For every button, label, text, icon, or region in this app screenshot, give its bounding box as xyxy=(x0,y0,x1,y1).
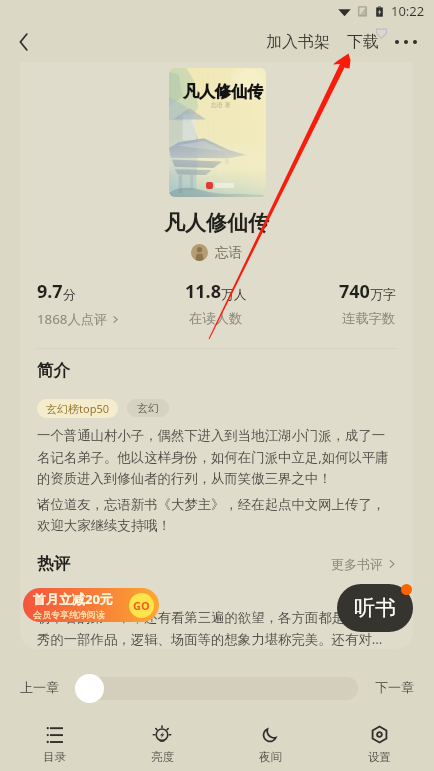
staticText: 凡人修仙传 xyxy=(20,210,413,236)
staticText: 11.8 xyxy=(185,279,221,304)
staticText: 忘语 著 xyxy=(211,101,231,109)
button[interactable]: 设置 xyxy=(325,711,434,771)
staticText: 万字 xyxy=(370,287,396,303)
button[interactable] xyxy=(78,677,358,700)
staticText: 下载 xyxy=(347,32,379,52)
staticText: 万人 xyxy=(221,287,247,303)
staticText: 诸位道友，忘语新书《大梦主》，经在起点中文网上传了，欢迎大家继续支持哦！ xyxy=(37,496,396,534)
staticText: 分 xyxy=(63,287,76,303)
staticText: 加入书架 xyxy=(266,32,330,52)
staticText: 热评 xyxy=(37,553,70,574)
staticText: 初中看的第一本，还有看第三遍的欲望，各方面都是非常优秀的一部作品，逻辑、场面等的… xyxy=(37,609,396,648)
staticText: 玄幻榜top50 xyxy=(46,401,109,416)
button[interactable]: 夜间 xyxy=(216,711,325,771)
staticText: 首月立减20元 xyxy=(33,590,113,608)
staticText: 简介 xyxy=(37,360,70,381)
staticText: 740 xyxy=(339,279,370,304)
button[interactable]: 740 xyxy=(276,279,396,327)
staticText: 忘语 xyxy=(215,244,242,261)
button[interactable]: 忘语 xyxy=(191,244,242,261)
staticText: 一个普通山村小子，偶然下进入到当地江湖小门派，成了一名记名弟子。他以这样身份，如… xyxy=(37,427,396,487)
button[interactable]: 更多书评 xyxy=(331,556,396,572)
staticText: 会员专享纯净阅读 xyxy=(33,609,105,620)
button[interactable]: 11.8 xyxy=(156,279,276,327)
staticText: 凡人修仙传 xyxy=(183,82,263,102)
button[interactable]: 目录 xyxy=(0,711,108,771)
button[interactable]: 听书 xyxy=(337,584,413,632)
staticText: 听书 xyxy=(354,595,396,621)
staticText: 更多书评 xyxy=(331,556,383,572)
button[interactable]: 首月立减20元 xyxy=(23,588,159,622)
staticText: 亮度 xyxy=(151,750,174,764)
staticText: 在读人数 xyxy=(189,310,243,327)
button[interactable]: 下载 xyxy=(342,22,386,62)
staticText: GO xyxy=(133,598,150,613)
staticText: 10:22 xyxy=(391,2,425,20)
staticText: 连载字数 xyxy=(342,310,396,327)
button[interactable]: 加入书架 xyxy=(260,22,336,62)
staticText: 玄幻 xyxy=(137,401,159,415)
staticText: 夜间 xyxy=(259,750,282,764)
staticText: 1868人点评 xyxy=(37,310,108,328)
staticText: 9.7 xyxy=(37,279,63,304)
button[interactable]: 亮度 xyxy=(108,711,216,771)
button[interactable]: Back xyxy=(8,26,40,58)
staticText: 设置 xyxy=(368,750,391,764)
button[interactable]: 玄幻榜top50 xyxy=(37,399,118,418)
button[interactable]: More options xyxy=(390,22,422,62)
button[interactable]: 玄幻 xyxy=(127,399,169,417)
button[interactable]: 上一章 xyxy=(20,679,59,695)
button[interactable]: 下一章 xyxy=(375,679,414,695)
staticText: 目录 xyxy=(43,750,66,764)
button[interactable]: 9.7 xyxy=(37,279,156,328)
